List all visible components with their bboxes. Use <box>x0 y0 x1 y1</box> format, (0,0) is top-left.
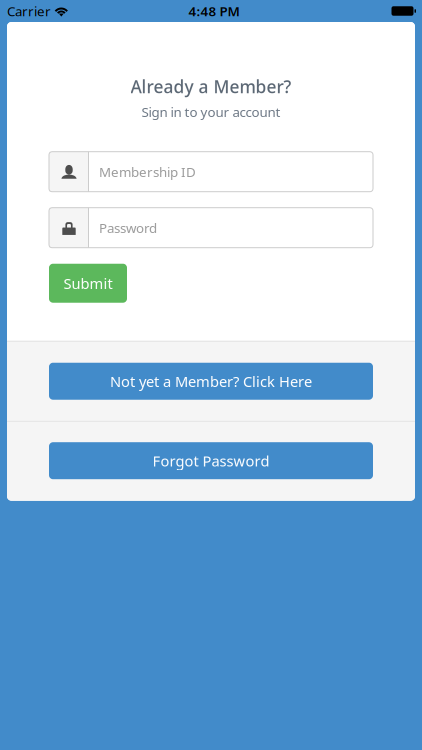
button[interactable]: Membership ID <box>49 152 373 192</box>
staticText: Not yet a Member? Click Here <box>110 371 312 391</box>
button[interactable]: Forgot Password <box>49 442 373 479</box>
staticText: Sign in to your account <box>141 103 280 121</box>
staticText: Carrier <box>7 2 51 20</box>
staticText: Membership ID <box>99 163 196 181</box>
staticText: Already a Member? <box>130 75 291 98</box>
button[interactable]: Submit <box>49 264 127 303</box>
staticText: Submit <box>63 273 112 293</box>
button[interactable]: Password <box>49 208 373 248</box>
staticText: 4:48 PM <box>188 2 239 20</box>
staticText: Forgot Password <box>152 451 269 470</box>
button[interactable]: Not yet a Member? Click Here <box>49 363 373 400</box>
staticText: Password <box>99 219 157 237</box>
